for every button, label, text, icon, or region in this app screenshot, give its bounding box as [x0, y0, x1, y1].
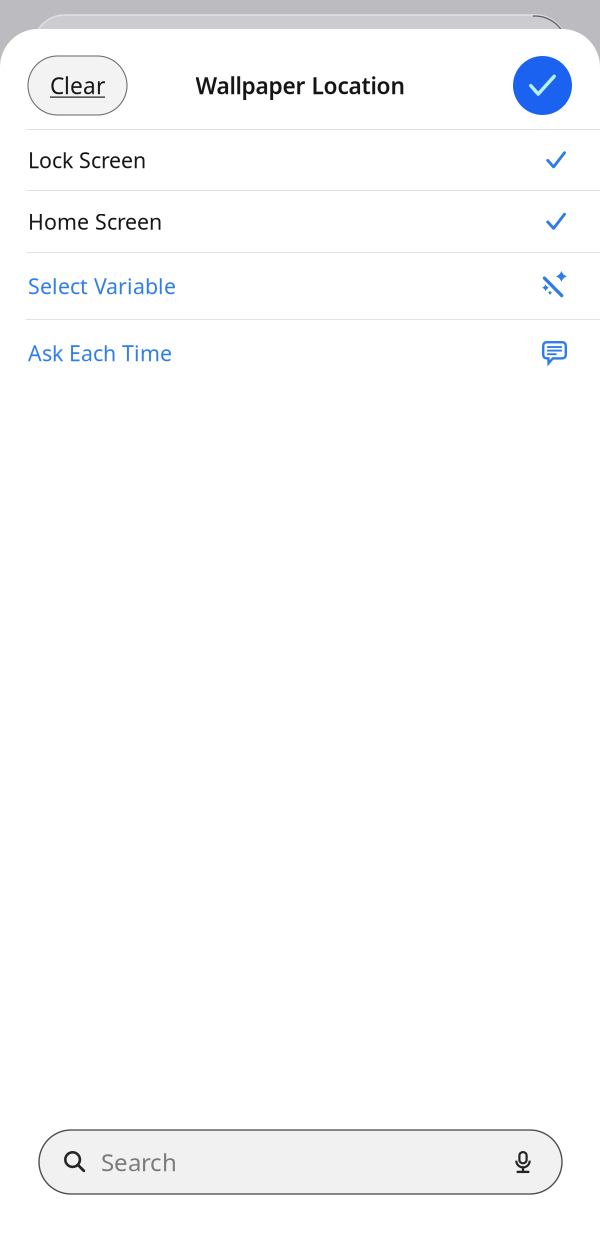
button[interactable]: Home Screen	[0, 191, 600, 252]
staticText: Lock Screen	[28, 146, 146, 174]
button[interactable]: Ask Each Time	[0, 320, 600, 386]
staticText: Ask Each Time	[28, 339, 172, 367]
button[interactable]: Lock Screen	[0, 130, 600, 190]
staticText: Wallpaper Location	[195, 70, 404, 100]
staticText: Select Variable	[28, 272, 176, 300]
staticText: Clear	[50, 70, 105, 100]
button[interactable]: Clear	[28, 56, 127, 115]
staticText: Search	[101, 1146, 177, 1178]
button[interactable]: Select Variable	[0, 253, 600, 319]
staticText: Home Screen	[28, 207, 162, 236]
button[interactable]: Done	[513, 56, 572, 115]
button[interactable]: Search	[0, 1130, 600, 1234]
